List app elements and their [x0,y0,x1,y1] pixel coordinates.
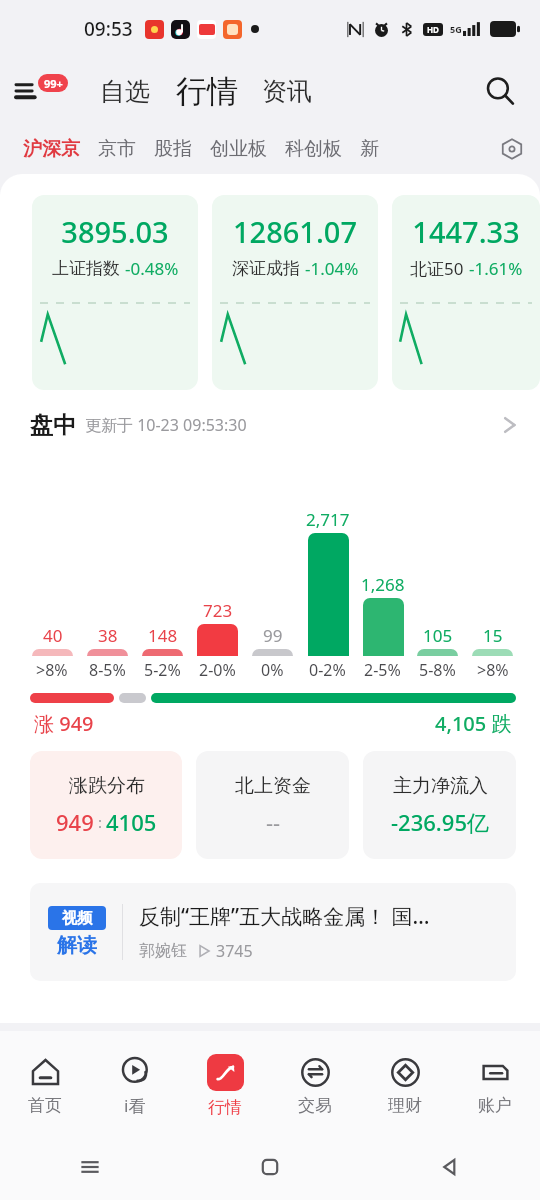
staticText: 5-2% [144,659,181,681]
button[interactable]: 38 [80,448,135,681]
staticText: 40 [43,624,63,647]
staticText: -236.95亿 [391,807,489,837]
button[interactable]: 12861.07 [212,195,378,390]
staticText: : [94,812,106,832]
button[interactable]: Back [360,1134,540,1200]
staticText: 创业板 [210,137,267,161]
button[interactable]: 涨跌分布 [30,751,182,859]
staticText: 5G [450,23,462,35]
staticText: 资讯 [262,76,312,107]
staticText: i看 [124,1094,146,1117]
staticText: 5-8% [419,659,456,681]
staticText: 行情 [176,72,238,111]
staticText: -0.48% [125,257,179,280]
staticText: 涨 949 [34,710,94,737]
staticText: 股指 [154,137,192,161]
staticText: 郭婉钰 [139,941,187,961]
staticText: 8-5% [89,659,126,681]
button[interactable]: 沪深京 [14,131,89,167]
staticText: 4105 [106,807,157,837]
staticText: 沪深京 [23,137,80,161]
staticText: 自选 [100,76,150,107]
button[interactable]: 北上资金 [196,751,349,859]
button[interactable]: 723 [190,448,245,681]
staticText: 3745 [216,940,253,962]
button[interactable]: 股指 [145,131,201,167]
staticText: 行情 [208,1097,242,1118]
staticText: 15 [483,624,503,647]
staticText: 99+ [44,76,63,91]
staticText: 解读 [57,933,97,958]
staticText: 723 [203,599,233,622]
button[interactable]: 15 [465,448,520,681]
staticText: 38 [98,624,118,647]
button[interactable]: 行情 [180,1031,270,1134]
button[interactable]: 新 [351,131,388,167]
button[interactable]: 京市 [89,131,145,167]
staticText: -1.61% [469,257,523,280]
staticText: 148 [148,624,178,647]
button[interactable]: 资讯 [260,76,314,107]
button[interactable]: 2,717 [300,448,355,681]
button[interactable]: 148 [135,448,190,681]
staticText: 12861.07 [212,212,378,251]
button[interactable]: 交易 [270,1031,360,1134]
button[interactable]: 理财 [360,1031,450,1134]
staticText: 0-2% [309,659,346,681]
staticText: 2-0% [199,659,236,681]
staticText: 4,105 跌 [435,710,512,737]
button[interactable]: 行情 [174,72,240,111]
button[interactable]: 40 [24,448,80,681]
staticText: -- [266,807,281,837]
staticText: 09:53 [84,16,133,42]
staticText: 反制“王牌”五大战略金属！ 国… [139,902,430,931]
staticText: HD [427,24,439,35]
button[interactable]: 99 [245,448,300,681]
button[interactable]: 3895.03 [32,195,198,390]
staticText: 0% [261,659,284,681]
staticText: 深证成指 [232,258,300,279]
staticText: 99 [263,624,283,647]
staticText: 上证指数 [52,258,120,279]
staticText: 新 [360,137,379,161]
button[interactable]: Settings [492,129,532,169]
staticText: -1.04% [305,257,359,280]
staticText: 主力净流入 [393,774,488,798]
button[interactable]: Search [478,69,522,113]
button[interactable]: 盘中 [0,402,540,448]
button[interactable]: 创业板 [201,131,276,167]
button[interactable]: Home [180,1134,360,1200]
staticText: >8% [36,659,68,681]
button[interactable]: Menu [16,71,70,111]
staticText: >8% [477,659,509,681]
staticText: 京市 [98,137,136,161]
button[interactable]: 科创板 [276,131,351,167]
button[interactable]: 视频 [30,883,516,981]
button[interactable]: 1447.33 [392,195,540,390]
staticText: 2,717 [306,508,350,531]
staticText: 1447.33 [392,212,540,251]
staticText: 账户 [478,1095,512,1116]
staticText: 3895.03 [32,212,198,251]
button[interactable]: 首页 [0,1031,90,1134]
staticText: 涨跌分布 [69,774,145,798]
staticText: 交易 [298,1095,332,1116]
staticText: 949 [56,807,94,837]
staticText: 盘中 [30,411,76,440]
staticText: 2-5% [364,659,401,681]
staticText: 科创板 [285,137,342,161]
button[interactable]: Recents [0,1134,180,1200]
button[interactable]: 1,268 [355,448,410,681]
staticText: 视频 [62,909,92,928]
staticText: 105 [423,624,453,647]
button[interactable]: i看 [90,1031,180,1134]
button[interactable]: 主力净流入 [363,751,516,859]
staticText: 北证50 [410,257,464,280]
button[interactable]: 账户 [450,1031,540,1134]
button[interactable]: 自选 [98,76,152,107]
staticText: 北上资金 [235,774,311,798]
staticText: 更新于 10-23 09:53:30 [85,414,247,436]
staticText: 1,268 [361,573,405,596]
staticText: 理财 [388,1095,422,1116]
button[interactable]: 105 [410,448,465,681]
